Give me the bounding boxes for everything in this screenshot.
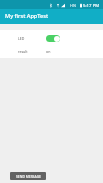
staticText: result	[18, 49, 28, 54]
staticText: My first AppTest	[5, 12, 49, 20]
staticText: LED	[18, 36, 25, 41]
button[interactable]: LED	[0, 32, 103, 45]
staticText: HN	[70, 3, 76, 8]
staticText: SEND MESSAGE	[16, 174, 41, 179]
button[interactable]: SEND MESSAGE	[10, 172, 46, 180]
staticText: on	[46, 49, 51, 54]
button[interactable]: Toggle LED	[46, 35, 60, 42]
staticText: 5:17 PM	[83, 2, 100, 8]
